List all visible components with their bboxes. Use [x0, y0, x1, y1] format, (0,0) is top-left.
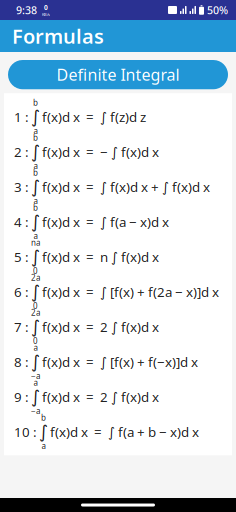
staticText: b	[41, 412, 46, 423]
button[interactable]: 4 :	[4, 204, 232, 239]
staticText: 6 :	[14, 283, 29, 301]
button[interactable]: Definite Integral	[8, 60, 228, 89]
button[interactable]: 1 :	[4, 99, 232, 134]
staticText: f(x)d x = n ∫ f(x)d x	[42, 248, 159, 266]
button[interactable]: 3 :	[4, 169, 232, 204]
staticText: 2a	[31, 307, 40, 318]
staticText: b	[33, 132, 38, 143]
staticText: f(x)d x = ∫ f(x)d x + ∫ f(x)d x	[42, 178, 210, 196]
staticText: 0	[33, 301, 38, 311]
staticText: 9 :	[14, 388, 29, 406]
staticText: ∫	[31, 177, 40, 197]
staticText: ∫	[31, 247, 40, 267]
staticText: 2a	[31, 272, 40, 283]
staticText: a	[33, 377, 37, 388]
staticText: ∫	[31, 317, 40, 337]
staticText: a	[41, 441, 45, 451]
staticText: f(x)d x = ∫ [f(x) + f(−x)]d x	[42, 353, 198, 371]
button[interactable]: 8 :	[4, 344, 232, 379]
staticText: f(x)d x = ∫ f(a + b − x)d x	[50, 423, 199, 441]
staticText: 1 :	[14, 108, 29, 126]
staticText: f(x)d x = ∫ [f(x) + f(2a − x)]d x	[42, 283, 219, 301]
staticText: f(x)d x = 2 ∫ f(x)d x	[42, 318, 159, 336]
staticText: na	[31, 237, 40, 248]
staticText: a	[33, 196, 37, 206]
staticText: a	[33, 126, 37, 136]
button[interactable]: 5 :	[4, 239, 232, 274]
staticText: a	[33, 231, 37, 241]
staticText: ∫	[31, 212, 40, 232]
staticText: 0	[33, 336, 38, 346]
staticText: f(x)d x = ∫ f(z)d z	[42, 108, 146, 126]
staticText: 9:38	[16, 3, 37, 17]
staticText: ∫	[31, 107, 40, 127]
staticText: ∫	[31, 142, 40, 162]
staticText: ∫	[31, 282, 40, 302]
staticText: 4 :	[14, 213, 29, 231]
staticText: 10 :	[14, 423, 37, 441]
staticText: 3 :	[14, 178, 29, 196]
staticText: a	[33, 342, 37, 353]
staticText: f(x)d x = 2 ∫ f(x)d x	[42, 388, 159, 406]
staticText: b	[33, 167, 38, 178]
staticText: b	[33, 202, 38, 213]
staticText: 0	[33, 266, 38, 276]
staticText: 7 :	[14, 318, 29, 336]
staticText: f(x)d x = − ∫ f(x)d x	[42, 143, 159, 161]
button[interactable]: 9 :	[4, 379, 232, 414]
staticText: KB/s	[42, 12, 50, 17]
staticText: Definite Integral	[56, 64, 179, 85]
staticText: ∫	[39, 422, 48, 442]
staticText: ∫	[31, 387, 40, 407]
staticText: −a	[31, 406, 40, 416]
button[interactable]: 2 :	[4, 134, 232, 169]
button[interactable]: 6 :	[4, 274, 232, 309]
staticText: b	[33, 97, 38, 108]
staticText: Formulas	[12, 23, 104, 49]
staticText: −a	[31, 371, 40, 381]
staticText: 0	[44, 3, 48, 12]
staticText: f(x)d x = ∫ f(a − x)d x	[42, 213, 169, 231]
staticText: 2 :	[14, 143, 29, 161]
staticText: 8 :	[14, 353, 29, 371]
button[interactable]: 7 :	[4, 309, 232, 344]
button[interactable]: 10 :	[4, 414, 232, 449]
staticText: a	[33, 161, 37, 171]
staticText: 50%	[207, 3, 228, 17]
staticText: 5 :	[14, 248, 29, 266]
staticText: ∫	[31, 352, 40, 372]
